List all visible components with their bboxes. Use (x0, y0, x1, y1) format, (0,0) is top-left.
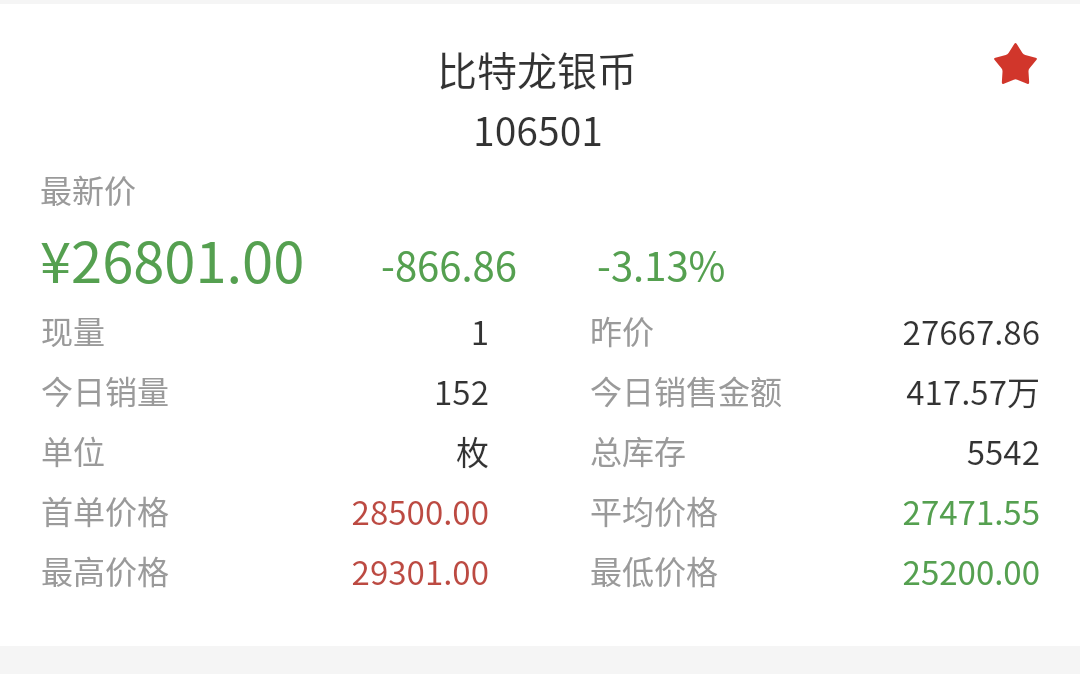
staticText: 28500.00 (41, 487, 489, 535)
staticText: 27667.86 (590, 307, 1040, 355)
button[interactable]: Favorite (992, 42, 1039, 89)
staticText: 现量 (41, 307, 106, 353)
staticText: 单位 (41, 427, 106, 473)
staticText: 平均价格 (590, 487, 719, 533)
staticText: 1 (41, 307, 489, 355)
staticText: -866.86 (381, 235, 517, 293)
staticText: 152 (41, 367, 489, 415)
staticText: 最低价格 (590, 547, 719, 593)
staticText: 今日销量 (41, 367, 170, 413)
staticText: 今日销售金额 (590, 367, 783, 413)
staticText: 总库存 (590, 427, 687, 473)
staticText: 5542 (590, 427, 1040, 475)
staticText: 25200.00 (590, 547, 1040, 595)
staticText: 枚 (41, 427, 489, 475)
staticText: 29301.00 (41, 547, 489, 595)
staticText: 首单价格 (41, 487, 170, 533)
staticText: 106501 (0, 101, 1078, 157)
staticText: 昨价 (590, 307, 655, 353)
staticText: 比特龙银币 (0, 40, 1077, 98)
staticText: 最高价格 (41, 547, 170, 593)
staticText: 最新价 (40, 166, 137, 212)
staticText: ¥26801.00 (40, 218, 305, 299)
staticText: -3.13% (597, 235, 726, 293)
staticText: 27471.55 (590, 487, 1040, 535)
staticText: 417.57万 (590, 367, 1040, 415)
